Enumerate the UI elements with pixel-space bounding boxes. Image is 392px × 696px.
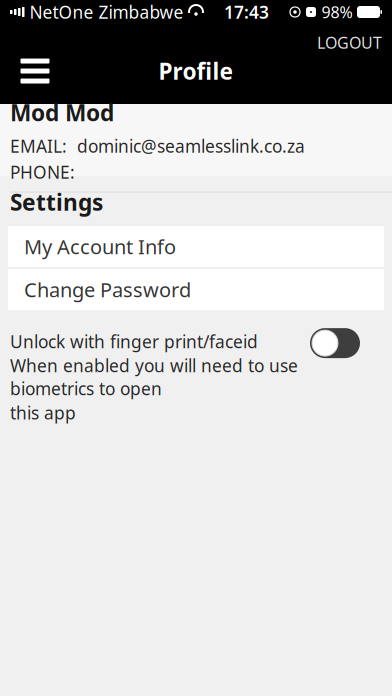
staticText: Profile (158, 56, 233, 86)
staticText: Mod Mod (10, 97, 114, 127)
button[interactable]: Unlock with biometrics toggle, off (310, 328, 360, 358)
staticText: 17:43 (224, 0, 269, 23)
staticText: EMAIL: dominic@seamlesslink.co.za (10, 134, 305, 157)
staticText: Unlock with finger print/faceid (10, 330, 258, 353)
staticText: When enabled you will need to use biomet… (10, 354, 298, 400)
button[interactable]: Change Password (8, 269, 384, 310)
staticText: 98% (321, 1, 352, 23)
button[interactable]: My Account Info (8, 226, 384, 267)
staticText: this app (10, 401, 76, 424)
staticText: My Account Info (24, 233, 176, 260)
button[interactable]: Menu (13, 49, 57, 93)
staticText: NetOne Zimbabwe (29, 0, 183, 23)
staticText: PHONE: (10, 161, 75, 184)
staticText: Change Password (24, 276, 191, 303)
button[interactable]: LOGOUT (307, 28, 392, 57)
staticText: LOGOUT (317, 32, 382, 53)
staticText: Settings (10, 187, 103, 217)
